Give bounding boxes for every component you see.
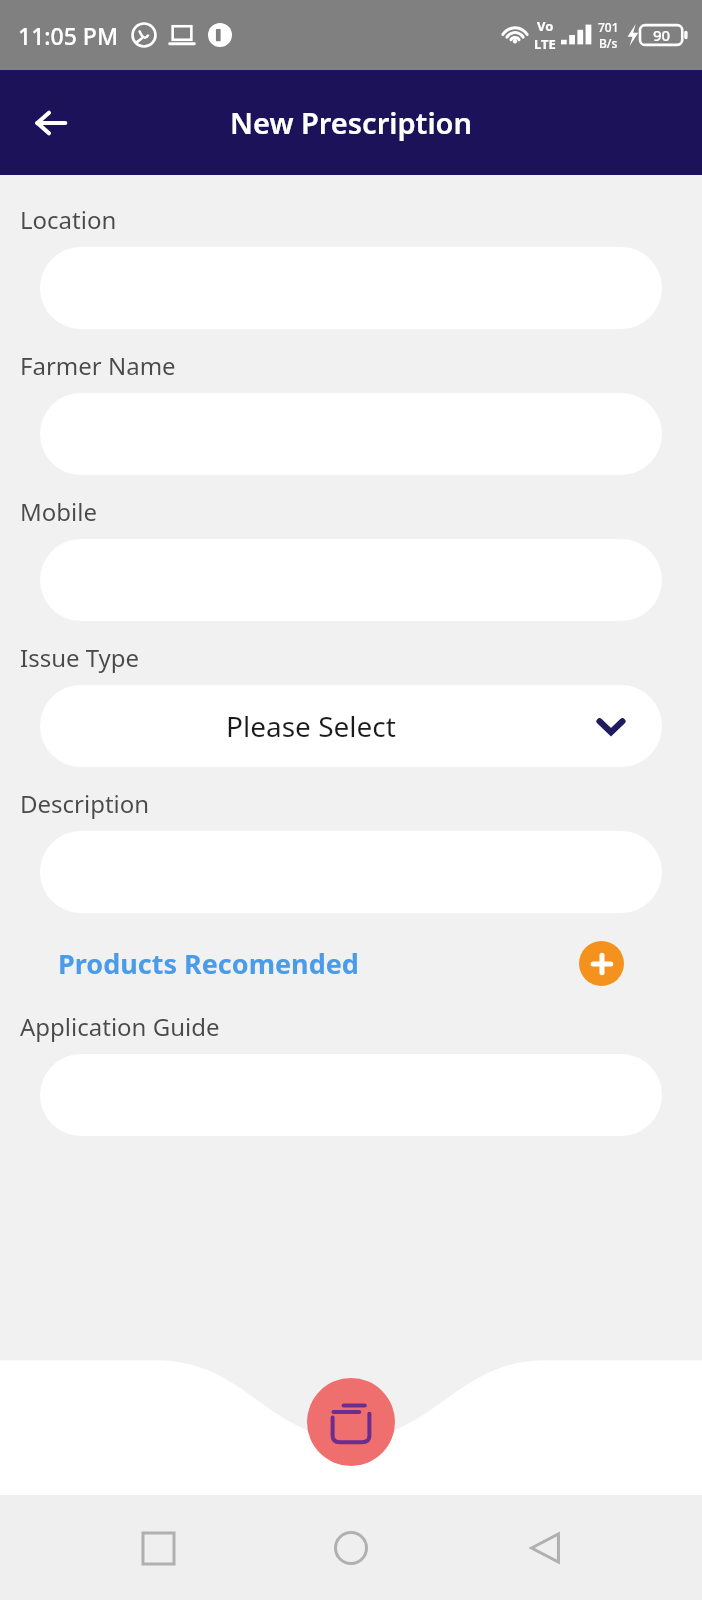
staticText: 701 (598, 19, 619, 35)
staticText: Mobile (20, 495, 97, 528)
staticText: New Prescription (230, 103, 472, 142)
staticText: LTE (534, 35, 556, 53)
staticText: Location (20, 203, 117, 236)
staticText: Application Guide (20, 1010, 220, 1043)
staticText: 90 (653, 25, 671, 45)
staticText: Issue Type (20, 641, 140, 674)
button[interactable]: Add product (579, 941, 624, 986)
staticText: Vo (537, 17, 554, 35)
button[interactable]: New prescription (307, 1378, 395, 1466)
button[interactable]: Products Recomended (58, 945, 359, 982)
button[interactable]: Recents (122, 1512, 194, 1584)
button[interactable]: Home (315, 1512, 387, 1584)
button[interactable]: Back (22, 94, 80, 152)
staticText: Please Select (226, 707, 396, 745)
staticText: B/s (599, 35, 618, 51)
staticText: Farmer Name (20, 349, 176, 382)
button[interactable]: Please Select (40, 685, 662, 767)
button[interactable]: Back (509, 1512, 581, 1584)
staticText: Description (20, 787, 150, 820)
staticText: 11:05 PM (18, 20, 119, 51)
